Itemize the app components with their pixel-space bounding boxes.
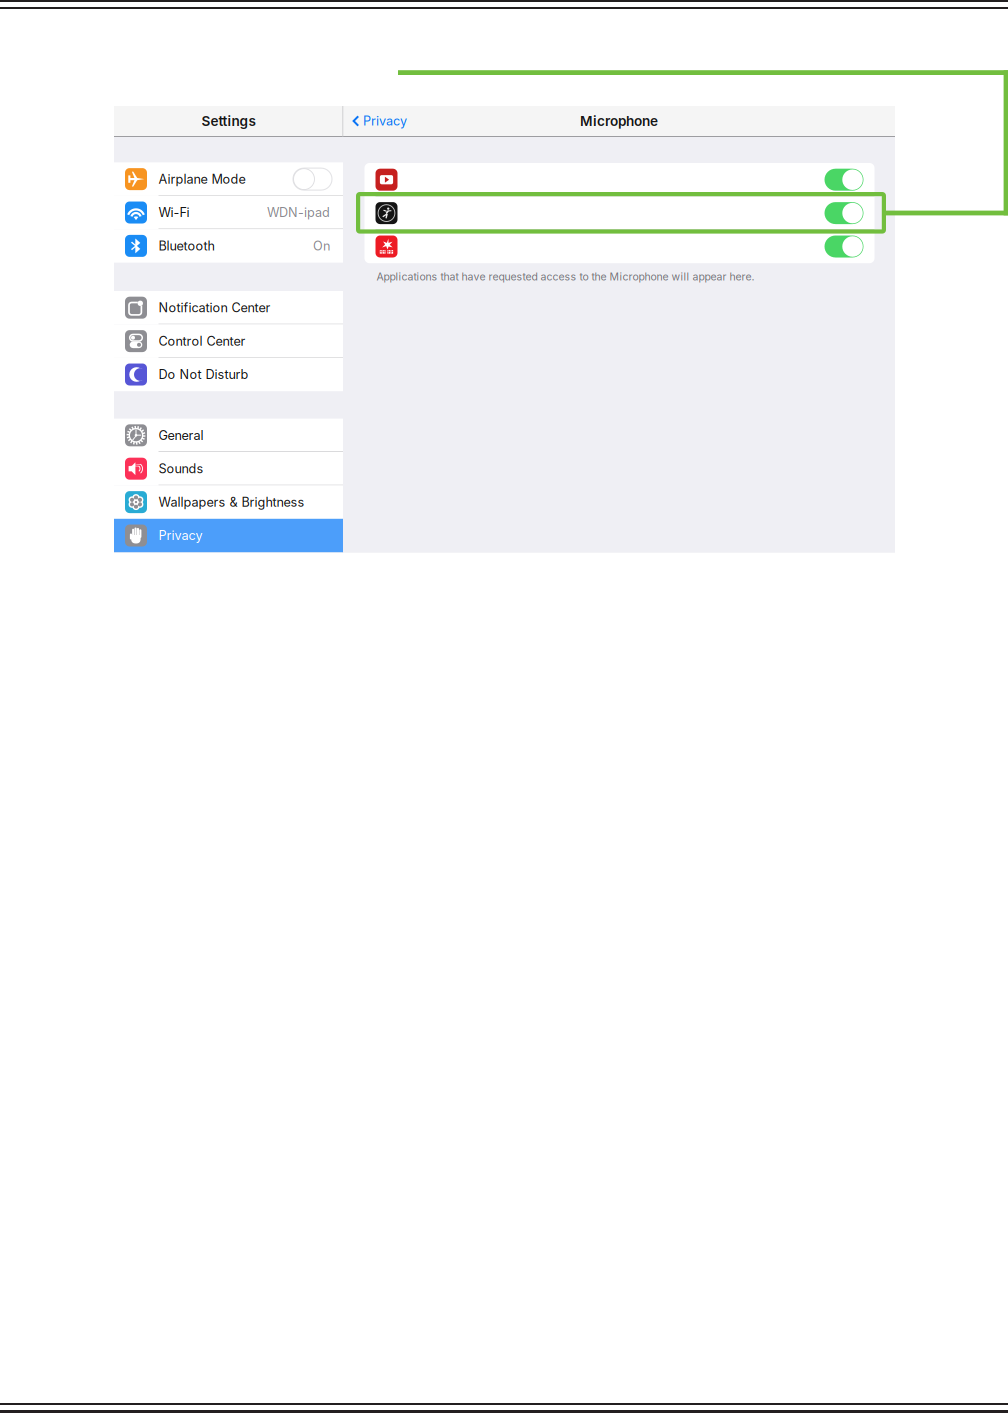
staticText: Settings	[201, 113, 255, 129]
staticText: General	[158, 428, 203, 443]
staticText: Privacy	[158, 528, 202, 543]
staticText: Notification Center	[158, 300, 270, 315]
button[interactable]: Privacy	[114, 519, 343, 552]
staticText: Control Center	[158, 333, 245, 349]
button[interactable]: Airplane Mode	[114, 162, 343, 196]
staticText: Sounds	[158, 461, 203, 476]
staticText: Wi-Fi	[158, 205, 189, 220]
button[interactable]: Notification Center	[114, 291, 343, 324]
staticText: Airplane Mode	[158, 171, 245, 187]
button[interactable]: Privacy	[343, 106, 433, 136]
staticText: Do Not Disturb	[158, 367, 248, 382]
staticText: Privacy	[363, 113, 407, 129]
button[interactable]: Settings	[114, 106, 343, 136]
button[interactable]: Wallpapers & Brightness	[114, 485, 343, 519]
button[interactable]: General	[114, 419, 343, 452]
button[interactable]: Microphone access toggle	[364, 196, 874, 230]
staticText: Microphone	[580, 113, 658, 129]
staticText: Applications that have requested access …	[376, 270, 754, 283]
staticText: Wallpapers & Brightness	[158, 494, 304, 510]
button[interactable]: Microphone access toggle	[364, 163, 874, 196]
button[interactable]: Wi-Fi	[114, 196, 343, 229]
button[interactable]: Microphone access toggle	[364, 230, 874, 263]
staticText: WDN-ipad	[267, 205, 330, 220]
button[interactable]: Bluetooth	[114, 229, 343, 263]
staticText: On	[313, 238, 330, 253]
button[interactable]: Control Center	[114, 324, 343, 358]
button[interactable]: Do Not Disturb	[114, 358, 343, 391]
staticText: Bluetooth	[158, 238, 214, 253]
button[interactable]: Sounds	[114, 452, 343, 485]
